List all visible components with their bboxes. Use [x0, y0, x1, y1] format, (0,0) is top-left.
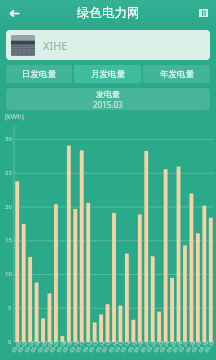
button[interactable]: 发电量 — [6, 88, 210, 110]
staticText: 月发电量 — [91, 69, 125, 80]
staticText: 25 — [5, 169, 12, 177]
staticText: 30 — [5, 135, 12, 143]
staticText: 03-09 — [61, 339, 75, 354]
staticText: 03-16 — [107, 339, 121, 354]
staticText: 绿色电力网 — [77, 5, 140, 21]
staticText: 0 — [8, 338, 12, 346]
staticText: 发电量 — [96, 89, 120, 99]
staticText: 03-13 — [87, 339, 101, 354]
staticText: 15 — [5, 236, 12, 244]
staticText: 03-27 — [177, 339, 191, 354]
staticText: 03-18 — [119, 339, 133, 354]
staticText: 2015.03 — [93, 99, 123, 110]
button[interactable]: Back — [0, 0, 28, 26]
staticText: 03-02 — [16, 339, 30, 354]
staticText: 03-15 — [100, 339, 114, 354]
staticText: 03-08 — [55, 339, 69, 354]
staticText: 03-05 — [36, 339, 50, 354]
staticText: 03-21 — [139, 339, 153, 354]
staticText: 03-01 — [10, 339, 24, 354]
staticText: 03-14 — [94, 339, 108, 354]
staticText: 03-12 — [81, 339, 95, 354]
staticText: 03-10 — [68, 339, 82, 354]
staticText: 03-04 — [29, 339, 43, 354]
staticText: 03-30 — [197, 339, 211, 354]
staticText: 03-17 — [113, 339, 127, 354]
staticText: 03-23 — [152, 339, 166, 354]
staticText: 03-31 — [203, 339, 216, 354]
staticText: 03-22 — [145, 339, 159, 354]
staticText: XIHE — [43, 38, 68, 53]
staticText: 03-29 — [190, 339, 204, 354]
button[interactable]: 月发电量 — [74, 65, 141, 83]
staticText: 03-24 — [158, 339, 172, 354]
staticText: 10 — [5, 270, 12, 278]
staticText: 03-26 — [171, 339, 185, 354]
button[interactable]: 日发电量 — [6, 65, 72, 83]
staticText: (kWh) — [5, 112, 24, 122]
staticText: 03-11 — [74, 339, 88, 354]
staticText: 03-25 — [165, 339, 179, 354]
staticText: 20 — [5, 203, 12, 211]
staticText: 5 — [8, 304, 12, 312]
button[interactable]: Menu — [190, 0, 216, 26]
staticText: 03-07 — [48, 339, 62, 354]
staticText: 03-28 — [184, 339, 198, 354]
staticText: 03-06 — [42, 339, 56, 354]
staticText: 03-19 — [126, 339, 140, 354]
button[interactable]: XIHE — [6, 30, 210, 60]
staticText: 年发电量 — [160, 69, 194, 80]
staticText: 03-03 — [23, 339, 37, 354]
button[interactable]: 年发电量 — [143, 65, 210, 83]
staticText: 03-20 — [132, 339, 146, 354]
staticText: 日发电量 — [22, 69, 56, 80]
